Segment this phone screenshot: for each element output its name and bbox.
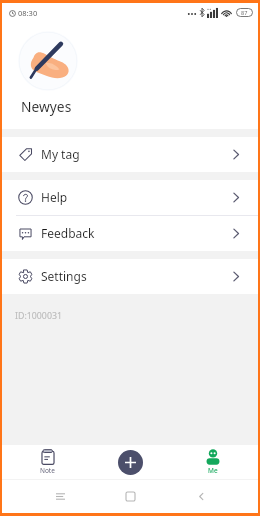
button[interactable]: My tag xyxy=(2,137,258,172)
staticText: 87 xyxy=(241,9,248,16)
button[interactable]: Note xyxy=(19,445,76,479)
button[interactable]: Help xyxy=(2,180,258,215)
staticText: Note xyxy=(40,466,55,475)
staticText: Newyes xyxy=(21,97,72,116)
staticText: 08:30 xyxy=(18,8,38,18)
button[interactable]: Me xyxy=(184,445,241,479)
staticText: Feedback xyxy=(41,225,95,241)
staticText: Help xyxy=(41,189,68,205)
button[interactable]: Feedback xyxy=(2,216,258,251)
staticText: Settings xyxy=(41,268,87,284)
staticText: ID:1000031 xyxy=(15,310,62,322)
button[interactable]: Settings xyxy=(2,259,258,294)
button[interactable]: Home xyxy=(117,483,143,509)
staticText: My tag xyxy=(41,146,80,162)
staticText: Me xyxy=(208,466,218,475)
button[interactable]: Back xyxy=(188,483,214,509)
button[interactable]: Add xyxy=(118,450,143,475)
button[interactable]: Recents xyxy=(47,483,73,509)
